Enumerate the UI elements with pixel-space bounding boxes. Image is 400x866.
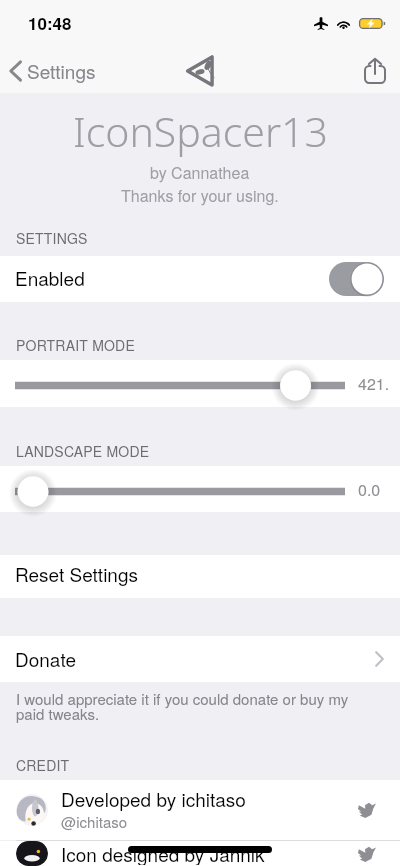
button[interactable]: Enabled toggle <box>329 262 384 296</box>
other: Open Donate <box>375 651 384 667</box>
staticText: by Cannathea <box>150 161 250 184</box>
button[interactable]: Donate <box>0 636 400 682</box>
staticText: LANDSCAPE MODE <box>16 441 150 461</box>
button[interactable]: Enabled <box>0 256 400 302</box>
staticText: 10:48 <box>28 11 72 35</box>
other: App icon <box>185 54 215 88</box>
staticText: Developed by ichitaso <box>61 785 246 812</box>
staticText: Settings <box>27 57 96 84</box>
button[interactable]: Developed by ichitaso <box>0 780 400 840</box>
button[interactable]: Settings <box>0 51 106 90</box>
staticText: CREDIT <box>16 755 70 775</box>
staticText: 421. <box>358 372 390 395</box>
staticText: @ichitaso <box>61 811 128 832</box>
button[interactable]: Icon designed by Jannik <box>0 841 400 866</box>
staticText: SETTINGS <box>16 228 88 248</box>
staticText: PORTRAIT MODE <box>16 335 135 355</box>
staticText: 0.0 <box>358 478 381 501</box>
staticText: I would appreciate it if you could donat… <box>16 688 349 724</box>
button[interactable]: Share <box>352 52 400 89</box>
button[interactable]: 421. <box>0 360 400 407</box>
staticText: Reset Settings <box>15 560 138 587</box>
staticText: Enabled <box>15 264 85 291</box>
staticText: IconSpacer13 <box>73 103 328 159</box>
staticText: Icon designed by Jannik <box>61 840 265 865</box>
button[interactable]: Reset Settings <box>0 555 400 598</box>
button[interactable]: 0.0 <box>0 466 400 512</box>
staticText: Donate <box>15 645 76 672</box>
staticText: Thanks for your using. <box>121 184 279 207</box>
